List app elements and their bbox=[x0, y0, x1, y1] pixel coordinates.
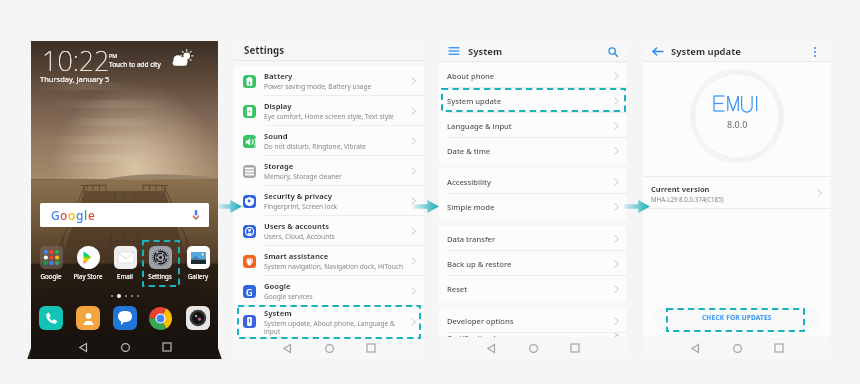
staticText: Battery bbox=[264, 71, 293, 81]
button[interactable]: Home bbox=[524, 339, 542, 357]
button[interactable]: Recents bbox=[362, 339, 380, 357]
button[interactable]: Camera bbox=[186, 306, 210, 330]
staticText: Security & privacy bbox=[264, 191, 333, 201]
button[interactable]: Current version bbox=[643, 177, 830, 209]
staticText: Eye comfort, Home screen style, Text sty… bbox=[264, 112, 394, 121]
staticText: System update, About phone, Language & i… bbox=[264, 319, 406, 336]
staticText: System bbox=[264, 308, 292, 318]
staticText: MHA-L29 8.0.0.374(C185) bbox=[651, 195, 724, 203]
staticText: Do not disturb, Ringtone, Vibrate bbox=[264, 142, 366, 151]
staticText: Certification logos bbox=[447, 333, 514, 337]
staticText: Display bbox=[264, 101, 292, 111]
button[interactable]: Google bbox=[33, 246, 69, 280]
button[interactable]: Back up & restore bbox=[439, 251, 627, 276]
button[interactable]: Play Store bbox=[70, 246, 106, 280]
button[interactable]: Chrome bbox=[148, 306, 172, 330]
staticText: CHECK FOR UPDATES bbox=[702, 313, 772, 322]
button[interactable]: Recents bbox=[770, 339, 788, 357]
staticText: Gallery bbox=[180, 272, 216, 280]
button[interactable]: Sound bbox=[234, 126, 424, 156]
button[interactable]: About phone bbox=[439, 63, 627, 88]
staticText: Power saving mode, Battery usage bbox=[264, 82, 372, 91]
staticText: Simple mode bbox=[447, 202, 495, 212]
button[interactable]: Back bbox=[651, 45, 664, 58]
button[interactable]: Settings bbox=[142, 246, 178, 280]
button[interactable]: G bbox=[234, 276, 424, 306]
button[interactable]: Data transfer bbox=[439, 226, 627, 251]
button[interactable]: Display bbox=[234, 96, 424, 126]
button[interactable]: Recents bbox=[158, 338, 176, 356]
button[interactable]: Back bbox=[278, 339, 296, 357]
staticText: Settings bbox=[244, 44, 285, 57]
button[interactable]: CHECK FOR UPDATES bbox=[653, 306, 820, 329]
staticText: System update bbox=[671, 45, 741, 58]
button[interactable]: Battery bbox=[234, 66, 424, 96]
button[interactable]: System update bbox=[439, 88, 627, 113]
staticText: 10:22 bbox=[42, 42, 110, 79]
button[interactable]: Users & accounts bbox=[234, 216, 424, 246]
staticText: Settings bbox=[142, 272, 178, 280]
button[interactable]: Menu bbox=[447, 44, 460, 57]
staticText: o bbox=[60, 207, 68, 223]
button[interactable]: Smart assistance bbox=[234, 246, 424, 276]
button[interactable]: G bbox=[40, 203, 209, 227]
staticText: Thursday, January 5 bbox=[40, 74, 110, 84]
staticText: Google bbox=[264, 281, 291, 291]
button[interactable]: Home bbox=[320, 339, 338, 357]
button[interactable]: Language & input bbox=[439, 113, 627, 138]
button[interactable]: More options bbox=[808, 45, 821, 58]
button[interactable]: Back bbox=[686, 339, 704, 357]
button[interactable]: Reset bbox=[439, 276, 627, 301]
other: Voice search bbox=[193, 210, 199, 220]
staticText: Back up & restore bbox=[447, 259, 512, 269]
button[interactable]: Security & privacy bbox=[234, 186, 424, 216]
button[interactable]: Gallery bbox=[180, 246, 216, 280]
button[interactable]: Email bbox=[107, 246, 143, 280]
staticText: Play Store bbox=[70, 272, 106, 280]
button[interactable]: Search bbox=[606, 45, 619, 58]
button[interactable]: System bbox=[234, 306, 424, 337]
button[interactable]: Home bbox=[728, 339, 746, 357]
button[interactable]: Back bbox=[482, 339, 500, 357]
staticText: Memory, Storage cleaner bbox=[264, 172, 342, 181]
staticText: PM bbox=[109, 52, 118, 59]
button[interactable]: Recents bbox=[566, 339, 584, 357]
button[interactable]: Simple mode bbox=[439, 194, 627, 219]
staticText: Date & time bbox=[447, 146, 491, 156]
staticText: Developer options bbox=[447, 316, 514, 326]
button[interactable]: Back bbox=[74, 338, 92, 356]
staticText: Reset bbox=[447, 284, 468, 294]
button[interactable]: Date & time bbox=[439, 138, 627, 163]
staticText: About phone bbox=[447, 71, 495, 81]
staticText: o bbox=[68, 207, 76, 223]
staticText: Sound bbox=[264, 131, 288, 141]
staticText: e bbox=[88, 207, 95, 223]
staticText: g bbox=[76, 207, 84, 223]
staticText: Language & input bbox=[447, 121, 512, 131]
staticText: Fingerprint, Screen lock bbox=[264, 202, 338, 211]
button[interactable]: Accessibility bbox=[439, 169, 627, 194]
staticText: Storage bbox=[264, 161, 294, 171]
button[interactable]: Certification logos bbox=[439, 333, 627, 337]
staticText: System bbox=[468, 45, 503, 58]
button[interactable]: Storage bbox=[234, 156, 424, 186]
staticText: Users & accounts bbox=[264, 221, 330, 231]
staticText: Accessibility bbox=[447, 177, 491, 187]
staticText: G bbox=[51, 207, 60, 223]
staticText: 8.0.0 bbox=[727, 118, 748, 130]
staticText: Touch to add city bbox=[109, 60, 161, 69]
staticText: Data transfer bbox=[447, 234, 496, 244]
button[interactable]: Phone bbox=[39, 306, 63, 330]
button[interactable]: Home bbox=[116, 338, 134, 356]
staticText: Users, Cloud, Accounts bbox=[264, 232, 335, 241]
staticText: l bbox=[84, 207, 88, 223]
button[interactable]: Developer options bbox=[439, 308, 627, 333]
staticText: Google services bbox=[264, 292, 313, 301]
button[interactable]: Messages bbox=[113, 306, 137, 330]
staticText: Current version bbox=[651, 184, 710, 194]
staticText: Google bbox=[33, 272, 69, 280]
staticText: Email bbox=[107, 272, 143, 280]
staticText: System navigation, Navigation dock, HiTo… bbox=[264, 262, 404, 271]
staticText: Smart assistance bbox=[264, 251, 329, 261]
button[interactable]: Contacts bbox=[76, 306, 100, 330]
